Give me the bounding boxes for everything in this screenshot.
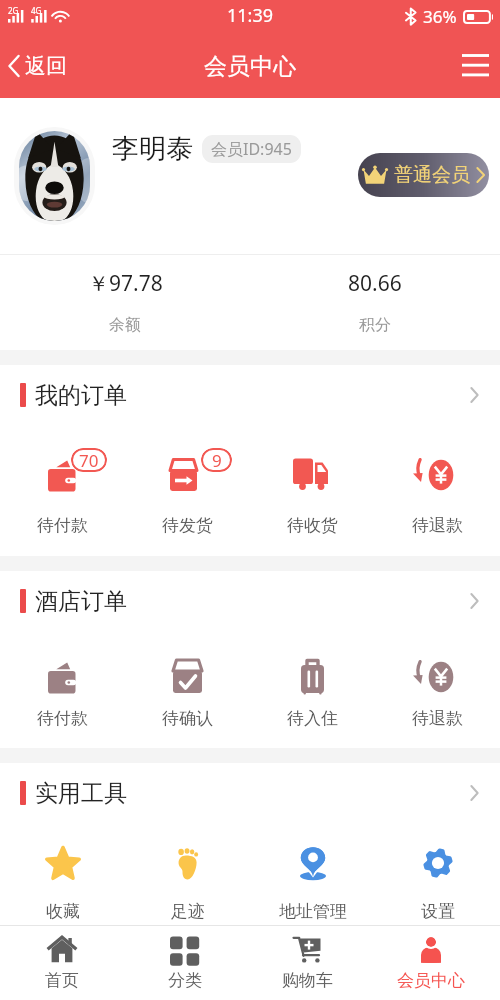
button[interactable]: 收藏 <box>0 823 125 924</box>
staticText: 70 <box>79 449 99 472</box>
button[interactable]: 李明泰 <box>0 98 500 254</box>
staticText: 待付款 <box>37 708 88 729</box>
button[interactable]: 会员中心 <box>369 926 492 1000</box>
button[interactable]: 待入住 <box>250 631 375 748</box>
staticText: 首页 <box>45 970 79 991</box>
staticText: 酒店订单 <box>35 587 127 616</box>
button[interactable]: 足迹 <box>125 823 250 924</box>
staticText: 待收货 <box>287 515 338 536</box>
staticText: 李明泰 <box>112 132 193 166</box>
staticText: ￥97.78 <box>88 269 163 298</box>
button[interactable]: Menu <box>446 34 500 98</box>
button[interactable]: 返回 <box>0 43 79 89</box>
staticText: 2G <box>8 5 19 16</box>
staticText: 会员中心 <box>397 970 465 991</box>
button[interactable]: 待退款 <box>375 425 500 556</box>
staticText: 会员ID:945 <box>211 138 292 160</box>
staticText: 普通会员 <box>394 163 470 187</box>
button[interactable]: 待退款 <box>375 631 500 748</box>
button[interactable]: 待确认 <box>125 631 250 748</box>
button[interactable]: 实用工具 <box>0 763 500 823</box>
button[interactable]: 70 <box>0 425 125 556</box>
staticText: 待发货 <box>162 515 213 536</box>
button[interactable]: 9 <box>125 425 250 556</box>
staticText: 购物车 <box>282 970 333 991</box>
staticText: 分类 <box>168 970 202 991</box>
button[interactable]: 地址管理 <box>250 823 375 924</box>
button[interactable]: 普通会员 <box>358 153 489 197</box>
staticText: 待入住 <box>287 708 338 729</box>
button[interactable]: 分类 <box>123 926 246 1000</box>
staticText: 4G <box>31 5 42 16</box>
staticText: 我的订单 <box>35 381 127 410</box>
staticText: 待付款 <box>37 515 88 536</box>
button[interactable]: 酒店订单 <box>0 571 500 631</box>
button[interactable]: 我的订单 <box>0 365 500 425</box>
staticText: 9 <box>212 449 222 472</box>
staticText: 80.66 <box>348 269 402 298</box>
button[interactable]: 待收货 <box>250 425 375 556</box>
button[interactable]: ￥97.78 <box>0 255 250 350</box>
button[interactable]: 待付款 <box>0 631 125 748</box>
button[interactable]: 80.66 <box>250 255 500 350</box>
staticText: 收藏 <box>46 901 80 922</box>
staticText: 待退款 <box>412 708 463 729</box>
staticText: 36% <box>423 5 457 28</box>
staticText: 待退款 <box>412 515 463 536</box>
staticText: 待确认 <box>162 708 213 729</box>
staticText: 余额 <box>109 315 141 335</box>
button[interactable]: 设置 <box>375 823 500 924</box>
staticText: 11:39 <box>227 3 274 28</box>
staticText: 会员中心 <box>204 52 296 81</box>
staticText: 足迹 <box>171 901 205 922</box>
button[interactable]: 首页 <box>0 926 123 1000</box>
staticText: 积分 <box>359 315 391 335</box>
staticText: 实用工具 <box>35 779 127 808</box>
staticText: 返回 <box>25 53 67 79</box>
staticText: 地址管理 <box>279 901 347 922</box>
button[interactable]: 购物车 <box>246 926 369 1000</box>
staticText: 设置 <box>421 901 455 922</box>
